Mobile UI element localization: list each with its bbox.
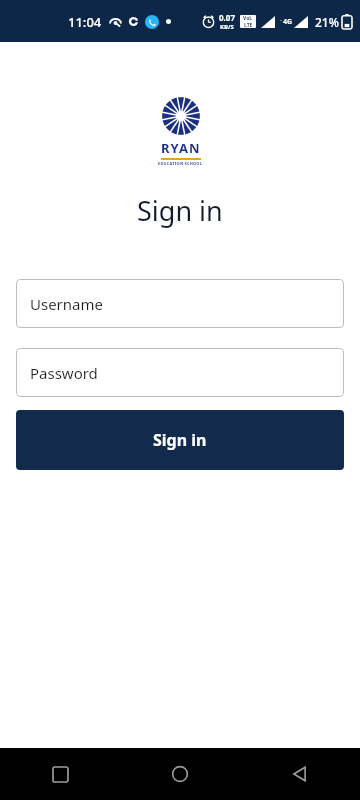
staticText: 0.07 — [219, 12, 235, 23]
staticText: KB/S — [220, 23, 234, 31]
staticText: RYAN — [161, 139, 201, 157]
button[interactable]: Password — [16, 348, 344, 397]
staticText: 11:04 — [68, 13, 102, 31]
staticText: 4G — [283, 17, 293, 27]
staticText: EDUCATION SCHOOL — [158, 161, 203, 166]
staticText: VoL — [243, 15, 253, 22]
staticText: Username — [30, 294, 103, 314]
button[interactable]: Recent apps — [0, 748, 120, 800]
staticText: 21% — [315, 14, 339, 30]
staticText: Sign in — [137, 192, 223, 229]
staticText: LTE — [244, 22, 253, 28]
button[interactable]: Sign in — [16, 410, 344, 470]
staticText: Sign in — [153, 429, 207, 451]
button[interactable]: Username — [16, 279, 344, 328]
button[interactable]: Home — [120, 748, 240, 800]
staticText: Password — [30, 363, 98, 383]
button[interactable]: Back — [240, 748, 360, 800]
